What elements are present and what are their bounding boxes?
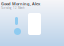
staticText: Tuesday, 12 March bbox=[1, 6, 25, 10]
staticText: Good Morning, Alex bbox=[1, 1, 40, 6]
